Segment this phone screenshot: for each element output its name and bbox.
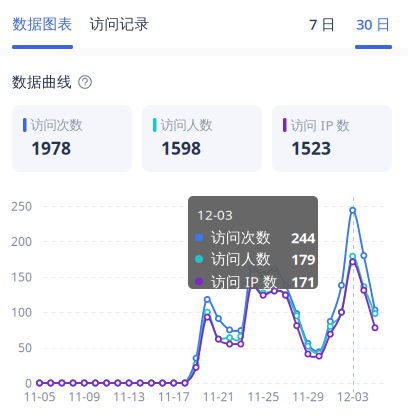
- staticText: 179: [291, 249, 315, 269]
- staticText: 12-03: [337, 388, 369, 404]
- staticText: 11-13: [113, 388, 145, 404]
- staticText: 访问 IP 数: [290, 116, 349, 134]
- staticText: 访问 IP 数: [211, 272, 278, 291]
- staticText: 244: [291, 228, 315, 247]
- staticText: 100: [11, 304, 32, 320]
- staticText: 250: [11, 198, 32, 214]
- staticText: 200: [11, 233, 32, 249]
- button[interactable]: 访问记录: [81, 0, 158, 48]
- button[interactable]: 访问 IP 数: [272, 105, 392, 172]
- staticText: 访问人数: [160, 117, 212, 133]
- staticText: 数据图表: [12, 15, 72, 33]
- staticText: 30 日: [356, 14, 391, 34]
- button[interactable]: 说明: [75, 72, 95, 92]
- staticText: 访问记录: [89, 15, 149, 33]
- staticText: 12-03: [197, 206, 233, 223]
- staticText: 0: [25, 375, 32, 391]
- staticText: 11-09: [68, 388, 100, 404]
- staticText: 150: [11, 269, 32, 285]
- button[interactable]: 数据图表: [4, 0, 81, 48]
- staticText: 11-05: [23, 388, 55, 404]
- staticText: 11-17: [158, 388, 190, 404]
- staticText: 7 日: [309, 14, 336, 34]
- staticText: 访问次数: [30, 117, 82, 133]
- staticText: 1978: [31, 136, 71, 159]
- staticText: 数据曲线: [12, 73, 72, 91]
- staticText: 1523: [291, 136, 331, 159]
- button[interactable]: 30 日: [347, 0, 400, 48]
- staticText: 11-25: [247, 388, 279, 404]
- button[interactable]: 访问次数: [12, 105, 132, 172]
- staticText: 171: [291, 272, 315, 291]
- staticText: 访问次数: [211, 228, 271, 246]
- staticText: 11-29: [292, 388, 324, 404]
- staticText: 11-21: [202, 388, 234, 404]
- button[interactable]: 7 日: [301, 0, 344, 48]
- button[interactable]: 访问人数: [142, 105, 262, 172]
- staticText: 50: [18, 340, 32, 355]
- staticText: 1598: [161, 136, 201, 159]
- staticText: 访问人数: [211, 250, 271, 268]
